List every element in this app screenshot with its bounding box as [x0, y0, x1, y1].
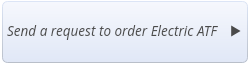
button[interactable]: Send request	[230, 25, 242, 37]
staticText: Send a request to order Electric ATF	[7, 22, 217, 40]
button[interactable]: Send a request to order Electric ATF	[2, 1, 248, 63]
